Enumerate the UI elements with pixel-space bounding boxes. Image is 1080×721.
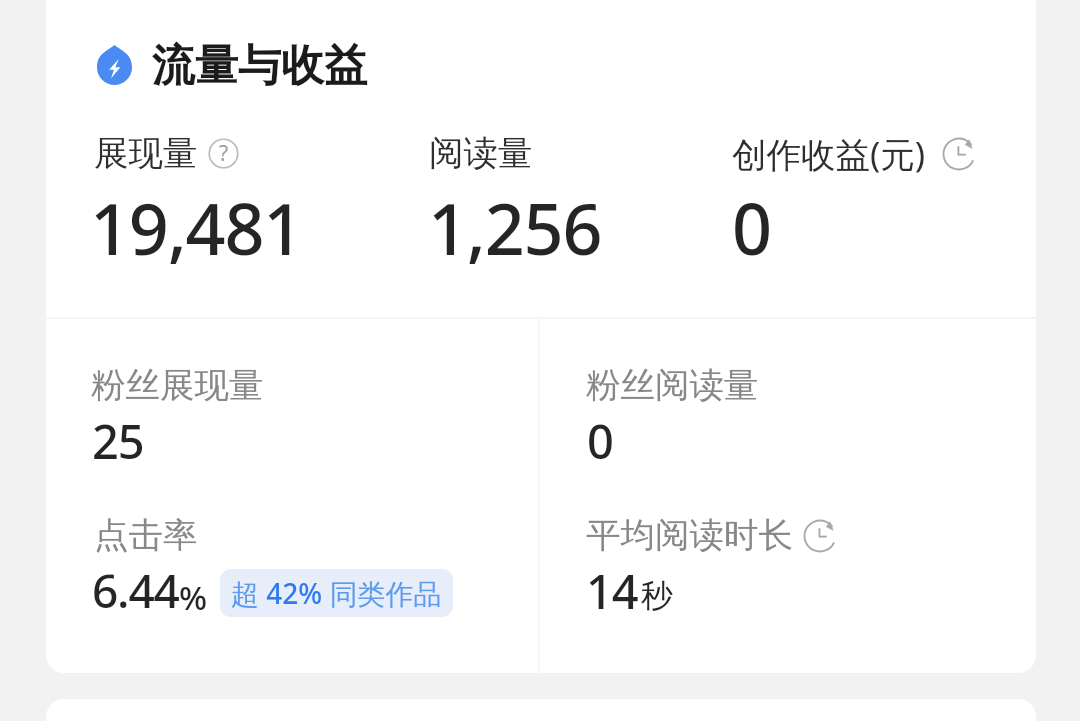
staticText: 1,256 — [428, 180, 602, 275]
button[interactable] — [386, 110, 685, 317]
button[interactable]: 超 42% 同类作品 — [220, 569, 453, 617]
staticText: 超 42% 同类作品 — [231, 574, 442, 612]
staticText: 14 — [586, 559, 638, 623]
staticText: 平均阅读时长 — [586, 514, 793, 557]
staticText: 19,481 — [90, 180, 303, 275]
staticText: 秒 — [641, 576, 673, 616]
staticText: 6.44 — [92, 559, 179, 622]
button[interactable] — [685, 110, 1036, 317]
other: Updated periodically — [802, 518, 838, 554]
staticText: 25 — [92, 409, 144, 473]
button[interactable]: 流量与收益 — [97, 38, 367, 92]
staticText: 0 — [732, 180, 771, 275]
staticText: 流量与收益 — [152, 39, 367, 93]
staticText: 点击率 — [94, 514, 198, 557]
button[interactable] — [540, 319, 1036, 497]
staticText: 0 — [587, 409, 613, 473]
other: Updated periodically — [941, 136, 977, 172]
staticText: 创作收益(元) — [732, 130, 926, 177]
staticText: ? — [219, 138, 229, 167]
staticText: 展现量 — [94, 132, 198, 175]
staticText: 阅读量 — [429, 132, 533, 175]
staticText: % — [179, 575, 208, 620]
other: Help — [208, 138, 239, 169]
staticText: 粉丝展现量 — [91, 364, 264, 407]
staticText: 粉丝阅读量 — [586, 364, 759, 407]
button[interactable] — [46, 110, 386, 317]
button[interactable] — [540, 497, 1036, 673]
button[interactable] — [46, 497, 538, 673]
button[interactable] — [46, 319, 538, 497]
